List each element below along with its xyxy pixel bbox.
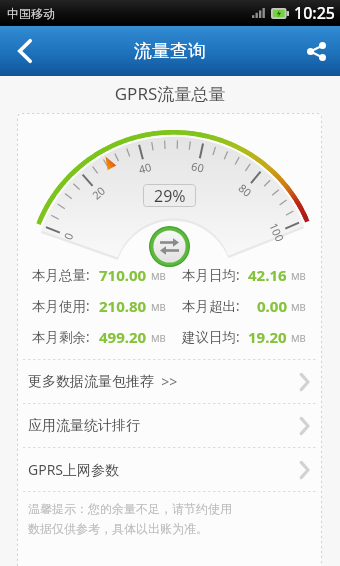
staticText: 更多数据流量包推荐 bbox=[28, 373, 154, 391]
staticText: 499.20 bbox=[99, 327, 147, 347]
button[interactable]: Share bbox=[290, 26, 340, 76]
staticText: MB bbox=[151, 332, 166, 345]
staticText: 建议日均: bbox=[182, 328, 240, 346]
staticText: 应用流量统计排行 bbox=[28, 417, 140, 435]
staticText: 10:25 bbox=[294, 2, 335, 24]
staticText: 210.80 bbox=[99, 296, 147, 316]
staticText: MB bbox=[291, 301, 306, 314]
staticText: 19.20 bbox=[248, 327, 287, 347]
staticText: 中国移动 bbox=[7, 6, 55, 21]
staticText: 本月使用: bbox=[32, 297, 90, 315]
staticText: 29% bbox=[154, 185, 186, 207]
button[interactable]: GPRS上网参数 bbox=[17, 448, 322, 491]
staticText: MB bbox=[291, 270, 306, 283]
staticText: 710.00 bbox=[99, 265, 147, 285]
staticText: MB bbox=[151, 301, 166, 314]
button[interactable]: 应用流量统计排行 bbox=[17, 404, 322, 447]
button[interactable]: Back bbox=[0, 26, 50, 76]
staticText: 本月总量: bbox=[32, 266, 90, 284]
staticText: GPRS上网参数 bbox=[28, 460, 120, 479]
staticText: 42.16 bbox=[248, 265, 287, 285]
button[interactable]: Switch data view bbox=[149, 226, 190, 267]
staticText: 本月超出: bbox=[182, 297, 240, 315]
staticText: 流量查询 bbox=[134, 40, 206, 63]
staticText: 温馨提示：您的余量不足，请节约使用 bbox=[28, 501, 232, 516]
staticText: 本月剩余: bbox=[32, 328, 90, 346]
staticText: MB bbox=[151, 270, 166, 283]
staticText: MB bbox=[291, 332, 306, 345]
button[interactable]: 更多数据流量包推荐 bbox=[17, 360, 322, 403]
staticText: 数据仅供参考，具体以出账为准。 bbox=[28, 521, 208, 536]
staticText: 0.00 bbox=[257, 296, 287, 316]
staticText: 本月日均: bbox=[182, 266, 240, 284]
staticText: >> bbox=[154, 372, 178, 391]
staticText: GPRS流量总量 bbox=[0, 82, 340, 105]
